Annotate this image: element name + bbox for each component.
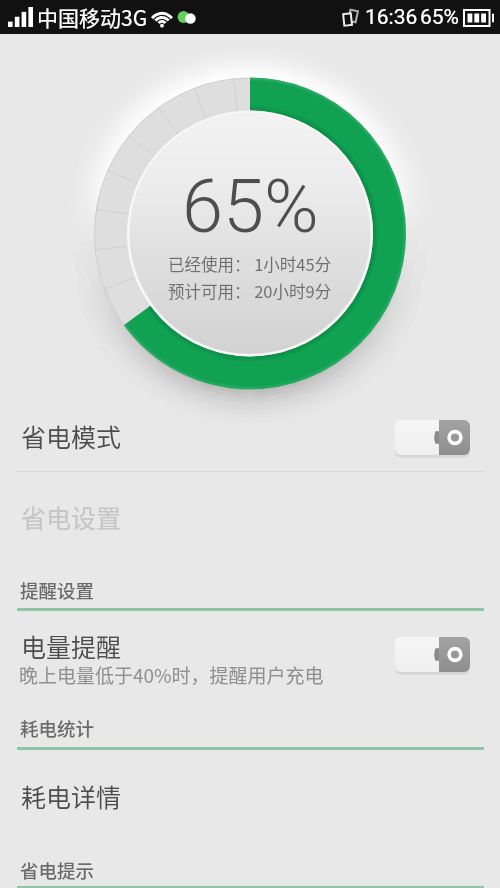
staticText: 耗电统计 <box>20 715 95 742</box>
staticText: 省电模式 <box>21 418 122 454</box>
staticText: 中国移动3G <box>37 2 148 32</box>
button[interactable]: Toggle <box>395 637 470 672</box>
staticText: 省电提示 <box>20 857 95 884</box>
button[interactable]: 省电模式 <box>0 403 500 469</box>
button[interactable]: Toggle <box>395 420 470 455</box>
button[interactable]: 耗电详情 <box>0 763 500 829</box>
staticText: 65% <box>182 163 319 250</box>
staticText: 16:36 <box>365 5 418 30</box>
staticText: 预计可用： 20小时9分 <box>168 279 332 303</box>
staticText: 已经使用： 1小时45分 <box>168 252 332 276</box>
staticText: 晚上电量低于40%时，提醒用户充电 <box>19 661 324 689</box>
staticText: 提醒设置 <box>20 577 95 604</box>
staticText: 65% <box>420 5 459 30</box>
button[interactable]: 省电设置 <box>0 484 500 550</box>
staticText: 省电设置 <box>21 499 122 535</box>
staticText: 耗电详情 <box>21 778 122 814</box>
staticText: 电量提醒 <box>21 628 122 664</box>
button[interactable]: 电量提醒 <box>0 613 500 679</box>
